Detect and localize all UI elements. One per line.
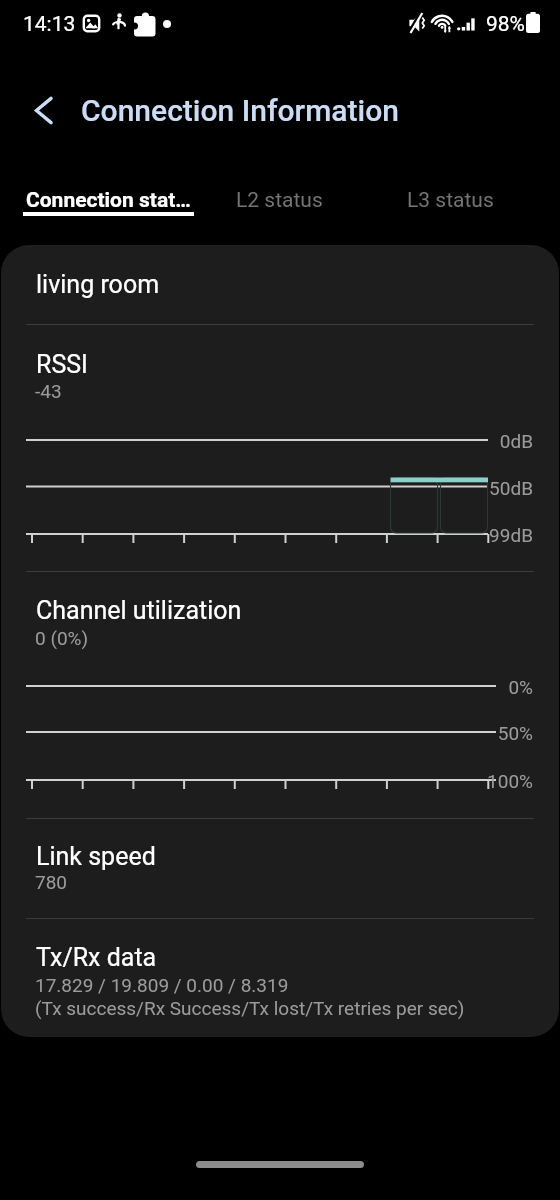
button[interactable]: L3 status [365, 182, 536, 230]
staticText: Channel utilization [36, 596, 242, 625]
staticText: L2 status [236, 188, 323, 213]
button[interactable]: Connection stat… [23, 182, 194, 230]
staticText: living room [36, 270, 160, 299]
staticText: Connection Information [81, 93, 399, 128]
staticText: L3 status [407, 188, 494, 213]
staticText: 780 [35, 871, 68, 893]
staticText: Link speed [36, 842, 156, 871]
staticText: 99dB [431, 524, 533, 546]
staticText: 50% [431, 722, 533, 744]
staticText: 17.829 / 19.809 / 0.00 / 8.319 [35, 974, 289, 996]
staticText: 100% [431, 770, 533, 792]
staticText: 50dB [431, 477, 533, 499]
staticText: RSSI [36, 350, 88, 379]
staticText: Connection stat… [26, 188, 191, 213]
button[interactable]: Back [20, 87, 67, 134]
button[interactable]: L2 status [194, 182, 365, 230]
staticText: Tx/Rx data [36, 943, 157, 972]
staticText: 14:13 [23, 12, 76, 37]
staticText: (Tx success/Rx Success/Tx lost/Tx retrie… [35, 997, 465, 1019]
staticText: 0 (0%) [35, 627, 89, 649]
staticText: 98% [486, 12, 525, 37]
staticText: 0dB [431, 430, 533, 452]
staticText: -43 [35, 380, 62, 402]
staticText: 0% [431, 676, 533, 698]
